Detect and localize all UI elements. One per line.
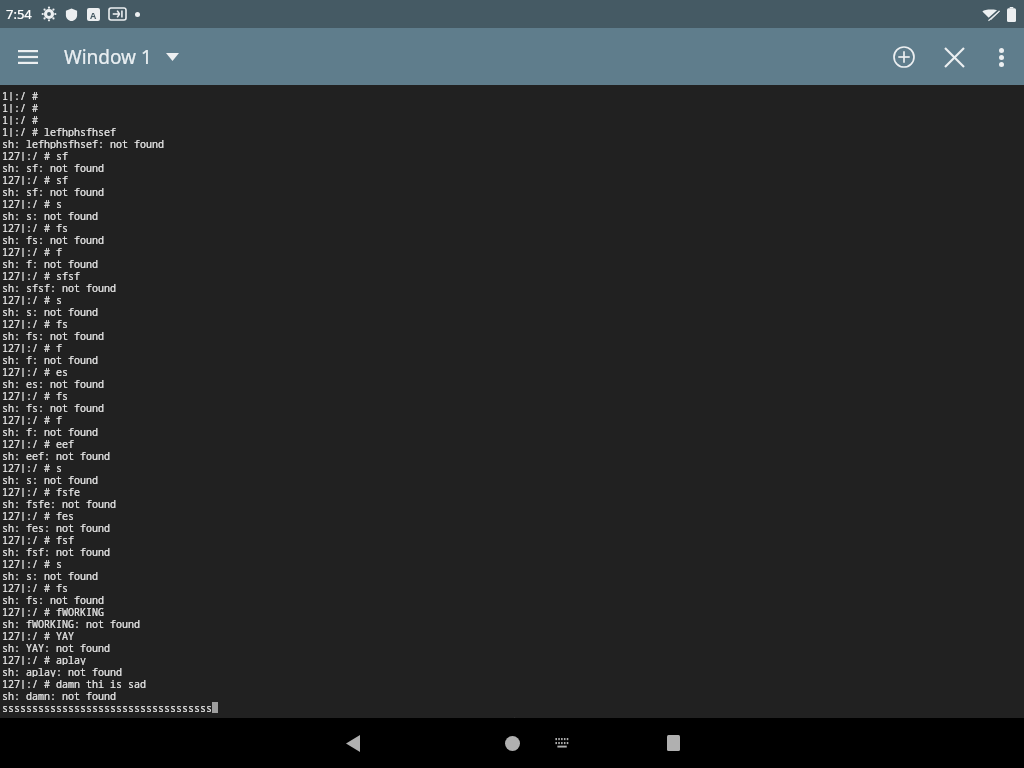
staticText: 127|:/ # s <box>2 557 62 569</box>
staticText: sh: f: not found <box>2 425 98 437</box>
staticText: sh: sfsf: not found <box>2 281 116 293</box>
staticText: 127|:/ # es <box>2 365 68 377</box>
staticText: A <box>90 9 97 21</box>
staticText: 127|:/ # fes <box>2 509 74 521</box>
staticText: sh: es: not found <box>2 377 104 389</box>
staticText: sh: fs: not found <box>2 401 104 413</box>
button[interactable]: Back <box>330 720 376 766</box>
staticText: Window 1 <box>64 44 152 70</box>
staticText: sssssssssssssssssssssssssssssssssss <box>2 701 212 713</box>
staticText: sh: YAY: not found <box>2 641 110 653</box>
staticText: 127|:/ # fs <box>2 389 68 401</box>
staticText: 127|:/ # fs <box>2 221 68 233</box>
button[interactable]: Window 1 <box>56 36 187 78</box>
staticText: 127|:/ # s <box>2 461 62 473</box>
staticText: 127|:/ # sf <box>2 173 68 185</box>
staticText: 127|:/ # f <box>2 413 62 425</box>
staticText: 127|:/ # fWORKING <box>2 605 104 617</box>
button[interactable]: Home <box>489 720 535 766</box>
staticText: 127|:/ # s <box>2 293 62 305</box>
staticText: sh: s: not found <box>2 473 98 485</box>
staticText: sh: damn: not found <box>2 689 116 701</box>
staticText: 127|:/ # fs <box>2 581 68 593</box>
staticText: sh: s: not found <box>2 209 98 221</box>
staticText: 127|:/ # s <box>2 197 62 209</box>
button[interactable]: Close window <box>930 33 978 81</box>
button[interactable]: More options <box>978 34 1024 80</box>
staticText: 7:54 <box>6 5 32 23</box>
staticText: 127|:/ # fs <box>2 317 68 329</box>
staticText: 127|:/ # eef <box>2 437 74 449</box>
staticText: 127|:/ # sf <box>2 149 68 161</box>
staticText: 127|:/ # f <box>2 245 62 257</box>
staticText: sh: fWORKING: not found <box>2 617 140 629</box>
staticText: sh: fes: not found <box>2 521 110 533</box>
staticText: 1|:/ # <box>2 113 38 125</box>
staticText: sh: lefhphsfhsef: not found <box>2 137 164 149</box>
staticText: 127|:/ # fsf <box>2 533 74 545</box>
staticText: sh: fsfe: not found <box>2 497 116 509</box>
staticText: sh: fs: not found <box>2 329 104 341</box>
staticText: sh: s: not found <box>2 305 98 317</box>
staticText: sh: s: not found <box>2 569 98 581</box>
staticText: sh: fs: not found <box>2 593 104 605</box>
button[interactable]: New window <box>878 31 930 83</box>
staticText: 1|:/ # <box>2 101 38 113</box>
staticText: sh: aplay: not found <box>2 665 122 677</box>
staticText: 127|:/ # f <box>2 341 62 353</box>
button[interactable]: Open navigation drawer <box>0 29 56 85</box>
staticText: sh: fsf: not found <box>2 545 110 557</box>
staticText: sh: sf: not found <box>2 161 104 173</box>
staticText: sh: fs: not found <box>2 233 104 245</box>
staticText: sh: f: not found <box>2 257 98 269</box>
staticText: 1|:/ # <box>2 89 38 101</box>
button[interactable]: Recent apps <box>650 720 696 766</box>
staticText: sh: eef: not found <box>2 449 110 461</box>
staticText: sh: f: not found <box>2 353 98 365</box>
staticText: 127|:/ # sfsf <box>2 269 80 281</box>
staticText: 127|:/ # aplay <box>2 653 86 665</box>
staticText: sh: sf: not found <box>2 185 104 197</box>
staticText: 1|:/ # lefhphsfhsef <box>2 125 116 137</box>
staticText: 127|:/ # damn thi is sad <box>2 677 146 689</box>
button[interactable]: Show keyboard <box>539 720 585 766</box>
staticText: 127|:/ # fsfe <box>2 485 80 497</box>
staticText: 127|:/ # YAY <box>2 629 74 641</box>
